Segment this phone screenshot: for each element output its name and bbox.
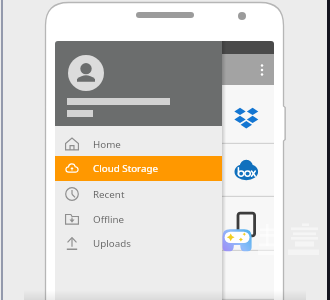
staticText: Cloud Storage [93, 162, 159, 175]
button[interactable]: Home [55, 132, 222, 157]
button[interactable]: More options [257, 63, 267, 77]
button[interactable]: Uploads [55, 231, 222, 256]
button[interactable]: Cloud Storage [55, 156, 222, 181]
button[interactable]: Offline [55, 207, 222, 232]
button[interactable]: More [222, 251, 274, 300]
button[interactable]: Box [222, 145, 274, 197]
staticText: Recent [93, 188, 125, 201]
staticText: Home [93, 138, 121, 151]
staticText: Offline [93, 213, 125, 226]
button[interactable]: Device storage [222, 198, 274, 251]
staticText: Uploads [93, 237, 131, 250]
button[interactable]: Recent [55, 182, 222, 207]
button[interactable]: Dropbox [222, 85, 274, 144]
